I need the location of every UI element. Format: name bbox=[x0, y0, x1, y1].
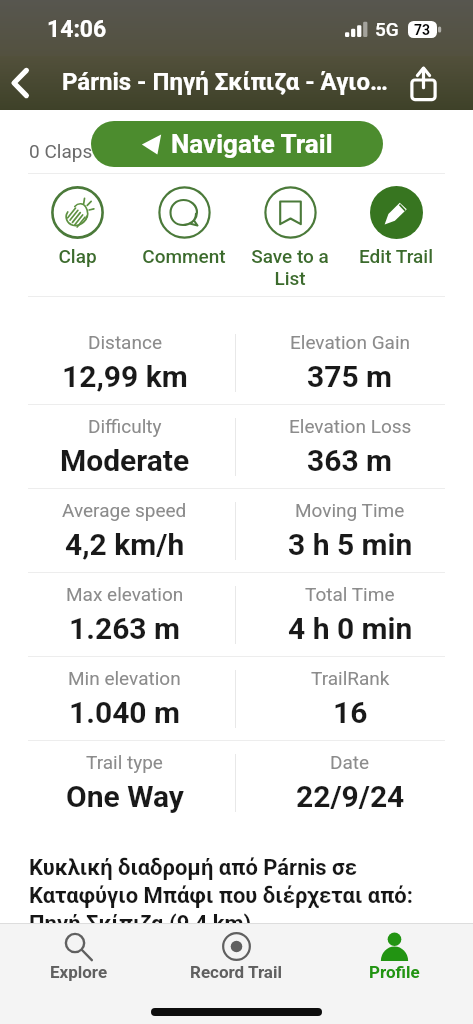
staticText: Date bbox=[330, 751, 370, 773]
staticText: Párnis - Πηγή Σκίπιζα - Άγιο… bbox=[62, 68, 388, 96]
button[interactable]: Navigate Trail bbox=[91, 121, 383, 167]
staticText: Max elevation bbox=[66, 583, 184, 605]
staticText: Explore bbox=[50, 962, 108, 982]
staticText: Record Trail bbox=[190, 962, 282, 982]
staticText: 3 h 5 min bbox=[288, 527, 413, 562]
staticText: Trail type bbox=[86, 751, 163, 773]
button[interactable]: Profile bbox=[315, 924, 473, 982]
button[interactable]: Save to a List bbox=[237, 186, 343, 290]
button[interactable]: Share bbox=[403, 63, 443, 103]
staticText: 5G bbox=[375, 18, 399, 40]
staticText: Κυκλική διαδρομή από Párnis σε Καταφύγιο… bbox=[29, 855, 449, 937]
staticText: Total Time bbox=[305, 583, 395, 605]
staticText: 22/9/24 bbox=[296, 779, 405, 814]
staticText: Average speed bbox=[62, 499, 187, 521]
staticText: Elevation Gain bbox=[290, 331, 411, 353]
staticText: Moving Time bbox=[295, 499, 405, 521]
staticText: Distance bbox=[88, 331, 162, 353]
button[interactable]: Explore bbox=[0, 924, 157, 982]
button[interactable]: Edit Trail bbox=[343, 186, 449, 267]
staticText: Edit Trail bbox=[359, 245, 433, 267]
button[interactable]: Back bbox=[0, 63, 40, 103]
staticText: TrailRank bbox=[311, 667, 390, 689]
staticText: Save to a List bbox=[251, 245, 329, 290]
staticText: 12,99 km bbox=[62, 359, 188, 394]
staticText: 73 bbox=[414, 22, 431, 38]
staticText: One Way bbox=[66, 779, 184, 814]
staticText: Profile bbox=[369, 962, 420, 982]
staticText: 0 Claps bbox=[29, 140, 93, 162]
staticText: Navigate Trail bbox=[171, 129, 333, 159]
staticText: 1.263 m bbox=[69, 611, 180, 646]
staticText: 16 bbox=[333, 695, 368, 730]
staticText: Min elevation bbox=[68, 667, 181, 689]
staticText: Elevation Loss bbox=[289, 415, 412, 437]
button[interactable]: Clap bbox=[24, 186, 131, 267]
staticText: Moderate bbox=[60, 443, 190, 478]
staticText: Difficulty bbox=[88, 415, 162, 437]
button[interactable]: Comment bbox=[131, 186, 237, 267]
staticText: Clap bbox=[58, 245, 97, 267]
staticText: 375 m bbox=[307, 359, 393, 394]
staticText: 14:06 bbox=[47, 16, 107, 43]
staticText: 363 m bbox=[307, 443, 393, 478]
staticText: Comment bbox=[142, 245, 226, 267]
button[interactable]: Record Trail bbox=[157, 924, 315, 982]
staticText: 4 h 0 min bbox=[288, 611, 413, 646]
staticText: 1.040 m bbox=[69, 695, 180, 730]
staticText: 4,2 km/h bbox=[65, 527, 185, 562]
